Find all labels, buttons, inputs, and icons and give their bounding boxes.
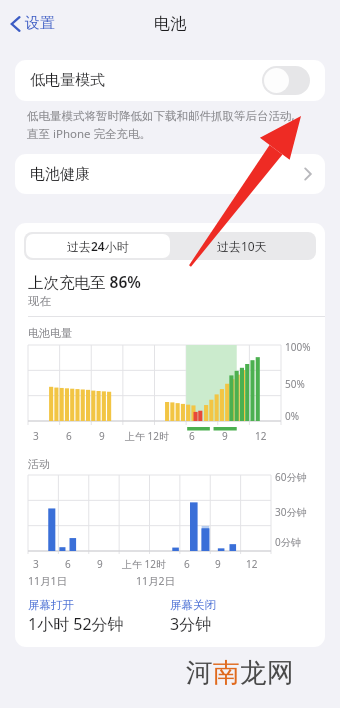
staticText: 0分钟	[275, 535, 301, 549]
staticText: 11月2日	[136, 574, 176, 588]
staticText: 电池健康	[30, 165, 90, 184]
staticText: 现在	[28, 294, 51, 308]
staticText: 60分钟	[275, 470, 307, 484]
button[interactable]: 电池健康	[15, 154, 325, 194]
staticText: 9	[215, 557, 221, 571]
staticText: 6	[65, 557, 71, 571]
button[interactable]: 低电量模式	[15, 60, 325, 101]
staticText: 6	[66, 429, 72, 443]
staticText: 屏幕打开	[28, 598, 74, 612]
button[interactable]: 低电量模式开关	[262, 66, 310, 95]
staticText: 南	[213, 656, 240, 690]
staticText: 9	[99, 429, 105, 443]
staticText: 上午 12时	[122, 557, 167, 571]
button[interactable]: 设置	[6, 10, 59, 37]
staticText: 6	[184, 557, 190, 571]
staticText: 3分钟	[170, 613, 212, 635]
staticText: 9	[222, 429, 228, 443]
staticText: 活动	[28, 457, 50, 471]
staticText: 龙网	[240, 656, 294, 690]
staticText: 上次充电至 86%	[28, 271, 141, 292]
staticText: 30分钟	[275, 505, 307, 519]
staticText: 100%	[285, 340, 311, 354]
staticText: 1小时 52分钟	[28, 613, 124, 635]
staticText: 低电量模式	[30, 71, 105, 90]
staticText: 设置	[25, 14, 55, 33]
staticText: 过去24小时	[67, 238, 129, 254]
staticText: 3	[33, 429, 39, 443]
staticText: 11月1日	[28, 574, 68, 588]
staticText: 12	[246, 557, 258, 571]
staticText: 50%	[285, 377, 305, 391]
staticText: 0%	[285, 409, 300, 423]
staticText: 电池	[154, 14, 186, 34]
staticText: 9	[97, 557, 103, 571]
button[interactable]: 过去24小时	[26, 234, 170, 258]
staticText: 上午 12时	[125, 429, 170, 443]
staticText: 3	[33, 557, 39, 571]
staticText: 屏幕关闭	[170, 598, 216, 612]
staticText: 12	[255, 429, 267, 443]
staticText: 河	[186, 656, 213, 690]
button[interactable]: 过去10天	[170, 234, 314, 258]
staticText: 电池电量	[28, 326, 72, 340]
staticText: 6	[189, 429, 195, 443]
staticText: 直至 iPhone 完全充电。	[27, 126, 152, 142]
staticText: 过去10天	[217, 238, 267, 254]
staticText: 低电量模式将暂时降低如下载和邮件抓取等后台活动,	[27, 108, 295, 124]
